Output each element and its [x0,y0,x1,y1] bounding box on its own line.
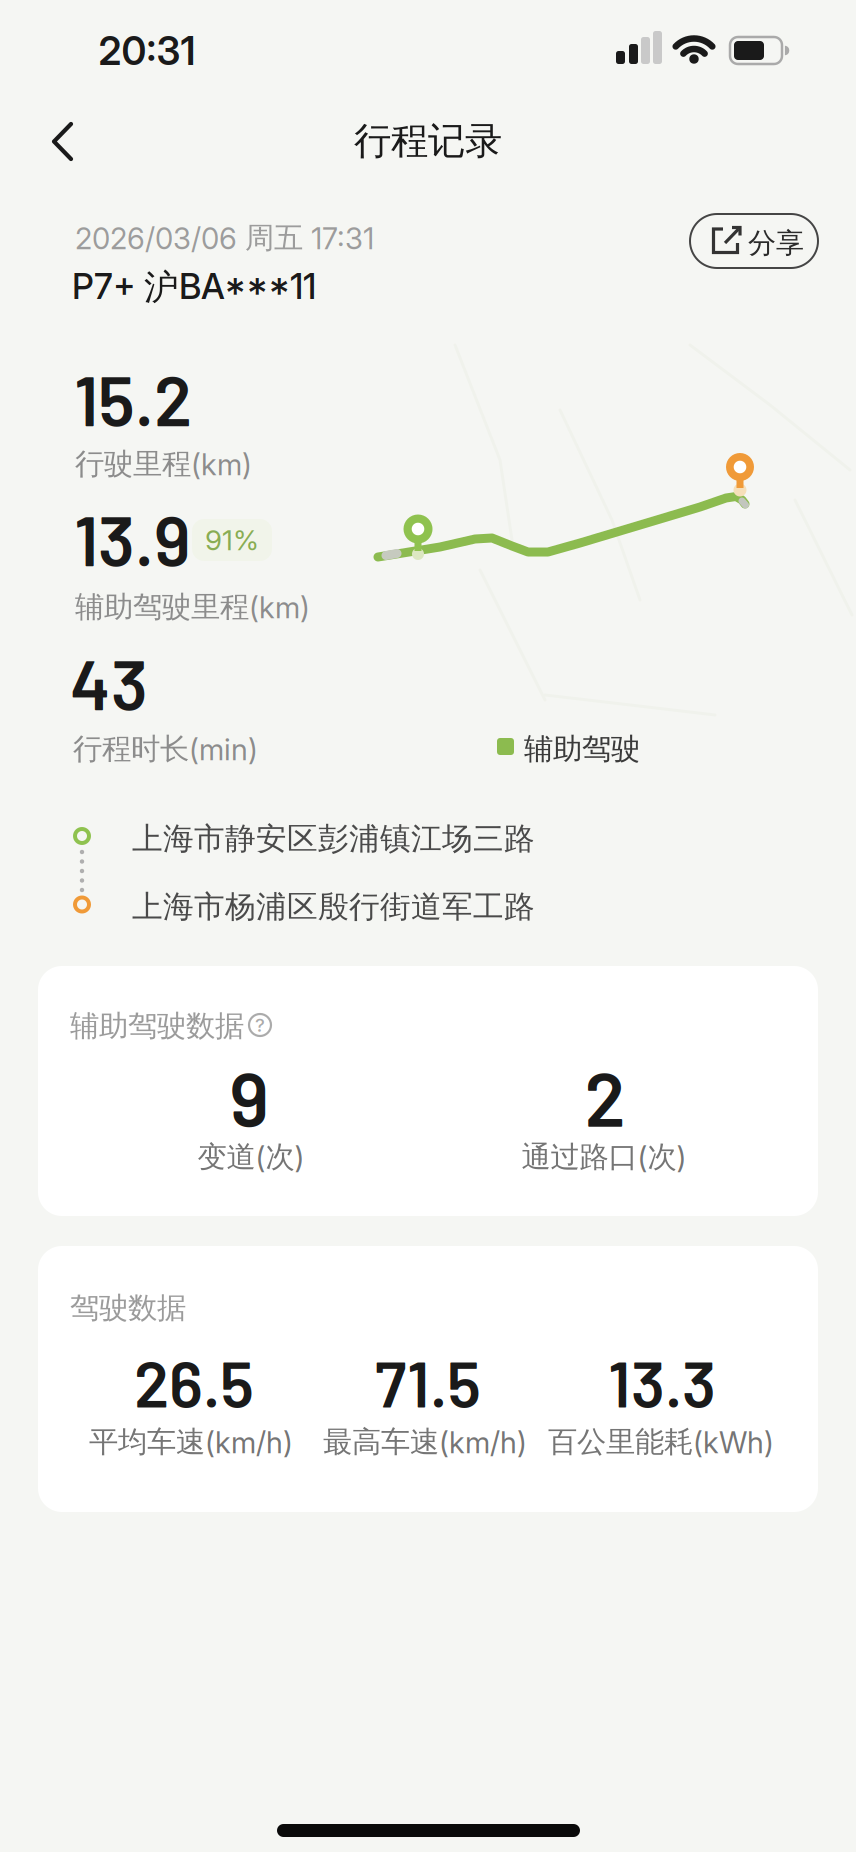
staticText: 行程时长(min) [73,731,258,767]
staticText: 71.5 [375,1344,481,1420]
staticText: 15.2 [74,357,192,440]
staticText: 2 [584,1052,625,1142]
staticText: 辅助驾驶数据 [70,1008,244,1044]
staticText: 43 [70,641,148,724]
staticText: 行驶里程(km) [75,446,252,482]
staticText: 13.3 [608,1344,716,1420]
staticText: 百公里能耗(kWh) [548,1424,774,1460]
staticText: 上海市杨浦区殷行街道军工路 [132,888,535,926]
staticText: 上海市静安区彭浦镇江场三路 [132,820,535,858]
staticText: 26.5 [134,1344,254,1420]
staticText: 通过路口(次) [521,1139,686,1175]
staticText: P7+ 沪BA***11 [72,266,316,309]
staticText: 13.9 [74,497,191,580]
staticText: 变道(次) [197,1139,304,1175]
staticText: 驾驶数据 [70,1290,186,1326]
button[interactable]: ? [248,1013,272,1037]
staticText: 91% [205,523,259,556]
button[interactable] [31,109,121,179]
staticText: 9 [229,1052,268,1142]
button[interactable]: 分享 [690,214,818,268]
staticText: 2026/03/06 周五 17:31 [75,220,374,256]
staticText: 最高车速(km/h) [323,1424,527,1460]
staticText: 辅助驾驶 [524,731,640,767]
staticText: 辅助驾驶里程(km) [75,589,310,625]
staticText: ? [255,1014,265,1036]
staticText: 分享 [748,226,804,260]
staticText: 平均车速(km/h) [89,1424,293,1460]
staticText: 20:31 [98,28,195,74]
staticText: 行程记录 [354,118,502,164]
